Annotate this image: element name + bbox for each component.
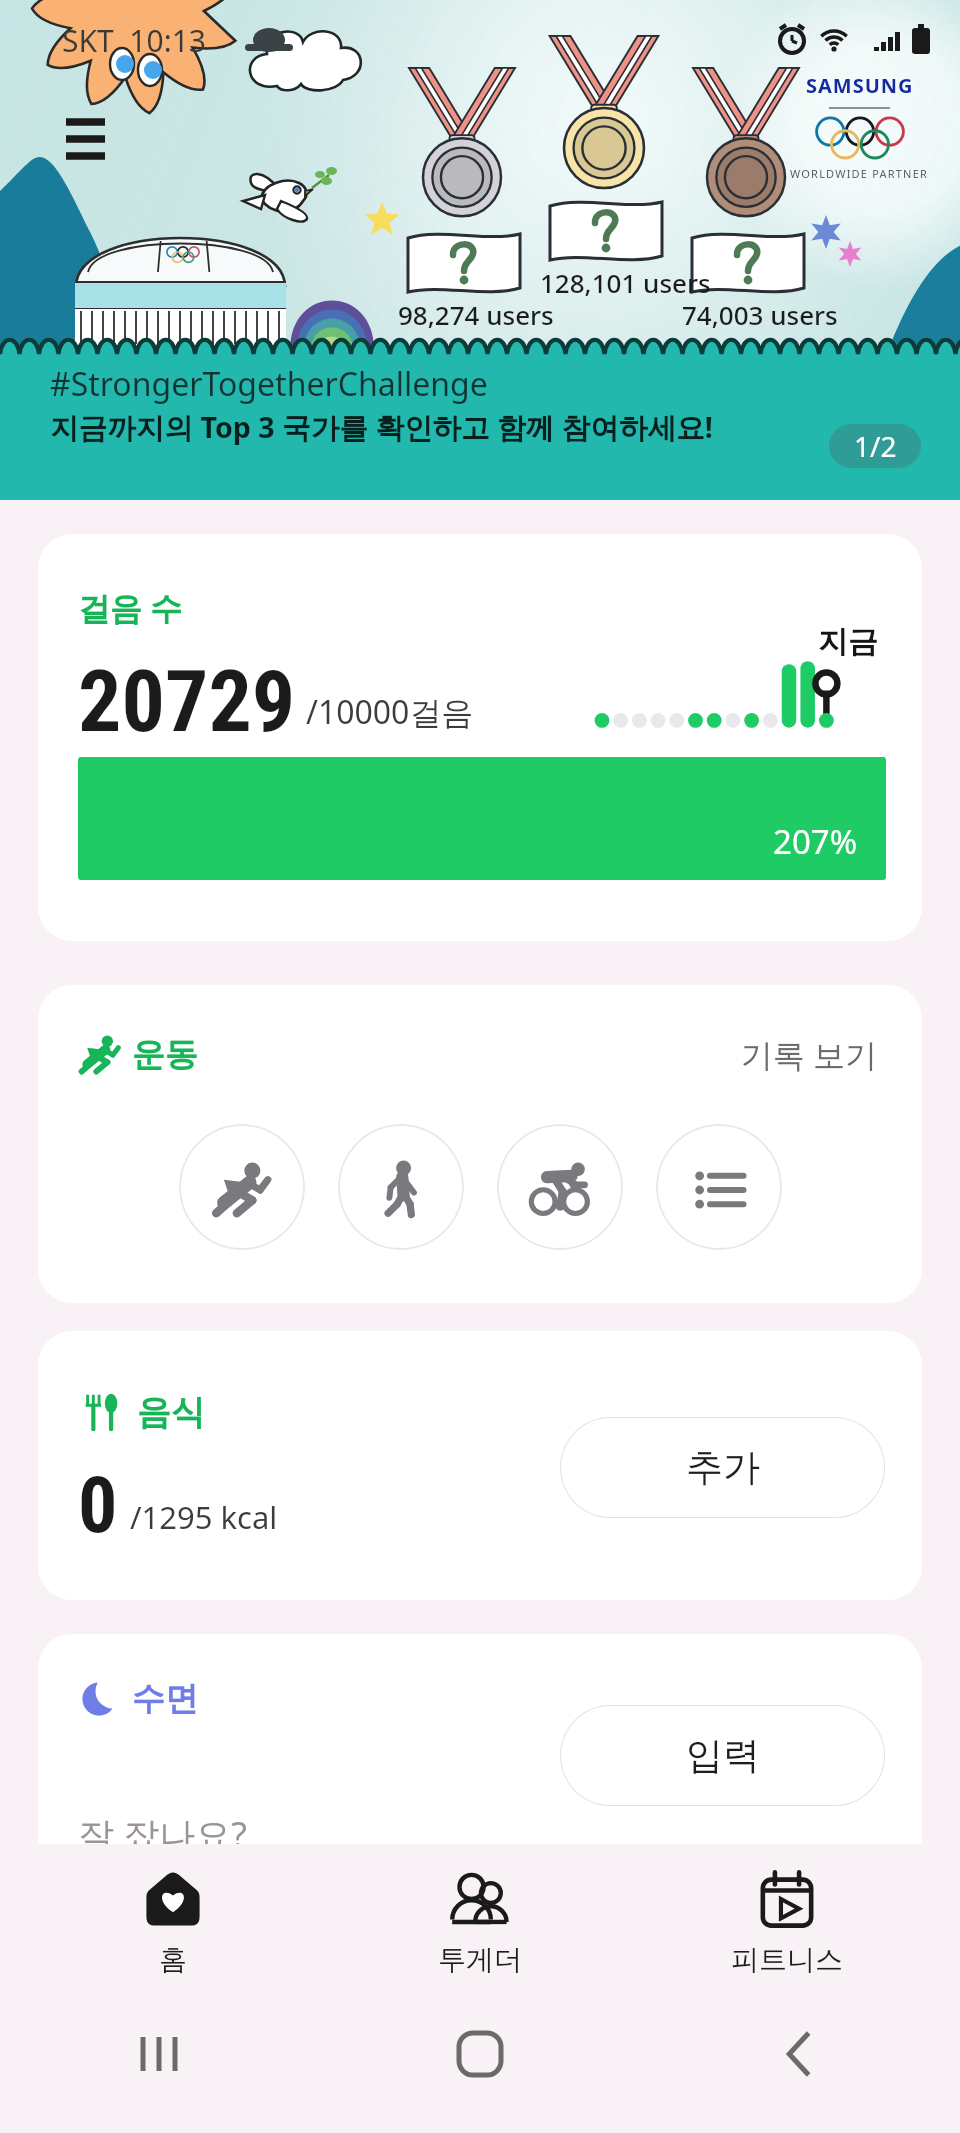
staticText: 추가 <box>686 1444 760 1491</box>
button[interactable]: 걸음 수 <box>38 534 922 941</box>
staticText: 0 <box>78 1460 118 1551</box>
staticText: /10000걸음 <box>306 690 474 734</box>
button[interactable]: 기록 보기 <box>733 1025 886 1085</box>
staticText: #StrongerTogetherChallenge <box>50 362 488 406</box>
staticText: WORLDWIDE PARTNER <box>790 166 929 181</box>
staticText: 잘 잤나요? <box>78 1810 247 1859</box>
button[interactable]: Home <box>320 2027 640 2081</box>
button[interactable]: 피트니스 <box>633 1844 940 1975</box>
button[interactable]: 수면 <box>38 1634 922 1894</box>
staticText: SAMSUNG <box>806 72 914 99</box>
staticText: 지금까지의 Top 3 국가를 확인하고 함께 참여하세요! <box>50 407 713 446</box>
staticText: 홈 <box>159 1942 187 1975</box>
button[interactable]: Recents <box>0 2027 320 2081</box>
button[interactable]: 투게더 <box>326 1844 633 1975</box>
staticText: 98,274 users <box>398 297 554 332</box>
button[interactable]: #StrongerTogetherChallenge <box>0 356 960 500</box>
button[interactable]: Run <box>179 1124 305 1250</box>
staticText: 걸음 수 <box>78 586 183 630</box>
button[interactable]: 운동 <box>38 985 922 1303</box>
button[interactable]: 추가 <box>560 1417 885 1518</box>
staticText: 음식 <box>137 1391 205 1434</box>
staticText: SKT 10:13 <box>62 20 206 61</box>
button[interactable]: 음식 <box>38 1331 922 1600</box>
button[interactable]: Cycle <box>497 1124 623 1250</box>
button[interactable]: More <box>656 1124 782 1250</box>
staticText: 운동 <box>132 1034 198 1076</box>
staticText: 1/2 <box>854 427 897 465</box>
button[interactable]: Back <box>640 2027 960 2081</box>
staticText: 128,101 users <box>540 265 711 300</box>
button[interactable]: Menu <box>54 108 118 166</box>
staticText: 수면 <box>132 1678 198 1720</box>
button[interactable]: 1/2 <box>829 424 921 468</box>
staticText: /1295 kcal <box>130 1496 278 1538</box>
staticText: 207% <box>773 819 858 864</box>
staticText: 지금 <box>818 623 878 661</box>
staticText: 투게더 <box>438 1942 522 1975</box>
button[interactable]: 입력 <box>560 1705 885 1806</box>
button[interactable]: 홈 <box>20 1844 326 1975</box>
staticText: 기록 보기 <box>741 1033 878 1077</box>
staticText: 20729 <box>78 651 296 752</box>
staticText: 피트니스 <box>731 1942 843 1975</box>
staticText: 74,003 users <box>682 297 838 332</box>
button[interactable]: Walk <box>338 1124 464 1250</box>
staticText: 입력 <box>686 1732 760 1779</box>
